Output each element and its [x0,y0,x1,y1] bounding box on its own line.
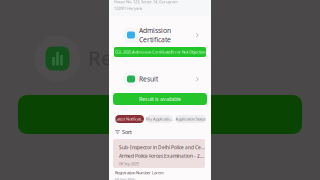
button[interactable]: Latest Notification [115,115,144,123]
button[interactable]: CGL 2025 Admission Certificate/Error Not… [114,47,206,57]
button[interactable]: Sort [115,129,132,135]
staticText: House No. 123, Sector 14, Gurugram [114,0,178,4]
staticText: Registration Number Lorem [115,170,164,175]
button[interactable]: Result [109,70,211,88]
staticText: 08 Sep 2025 [119,161,139,166]
staticText: Latest Notification [115,116,144,122]
button[interactable]: My Applications [146,115,173,123]
staticText: Sort [122,128,132,136]
staticText: 04 Sep 2025 [115,176,135,180]
staticText: My Applications [146,116,173,122]
staticText: Result [139,74,158,84]
staticText: Armed Police Forces Examination - 2025 [119,152,205,159]
staticText: Result is available [139,95,181,103]
button[interactable]: Sub-Inspector in Delhi Police and Centra… [113,139,205,168]
staticText: Certificate [139,35,171,44]
staticText: Result [88,44,148,71]
button[interactable]: Admission [109,26,211,44]
staticText: Application Status [175,116,205,122]
button[interactable]: Result is available [113,93,207,105]
button[interactable]: Application Status [175,115,206,123]
staticText: Sub-Inspector in Delhi Police and Centra… [119,144,205,150]
staticText: 122001 Haryana [114,5,142,11]
staticText: CGL 2025 Admission Certificate/Error Not… [115,49,205,55]
staticText: Admission [139,26,171,35]
